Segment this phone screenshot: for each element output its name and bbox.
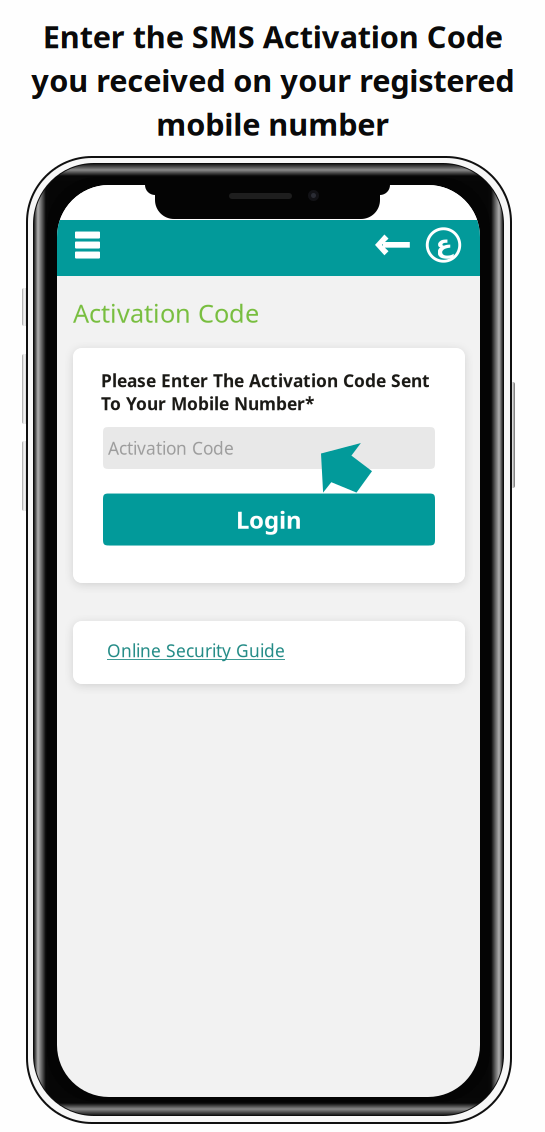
staticText: Login — [236, 504, 302, 535]
staticText: Activation Code — [108, 436, 234, 459]
staticText: Enter the SMS Activation Code you receiv… — [31, 16, 514, 144]
button[interactable]: Menu — [61, 217, 114, 273]
button[interactable]: Online Security Guide — [73, 621, 465, 684]
staticText: Online Security Guide — [107, 639, 285, 662]
button[interactable]: Switch language to Arabic — [417, 217, 470, 273]
button[interactable]: Login — [103, 493, 435, 545]
staticText: Please Enter The Activation Code Sent To… — [101, 369, 430, 415]
staticText: ع — [435, 230, 452, 258]
staticText: Activation Code — [73, 296, 259, 330]
button[interactable]: Back — [366, 217, 419, 273]
